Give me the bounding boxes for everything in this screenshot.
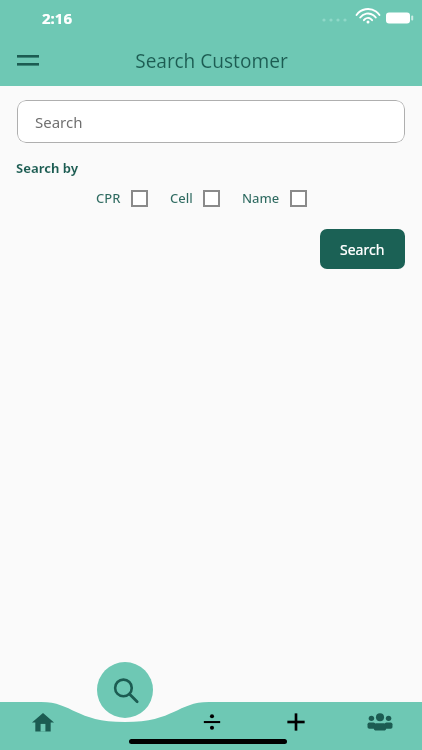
button[interactable]: Name bbox=[242, 189, 307, 207]
staticText: 2:16 bbox=[42, 8, 72, 28]
button[interactable]: Cell bbox=[170, 189, 220, 207]
staticText: Cell bbox=[170, 189, 193, 207]
button[interactable]: Menu bbox=[8, 41, 48, 81]
button[interactable]: Search bbox=[17, 100, 405, 143]
button[interactable]: Search bbox=[320, 229, 405, 269]
button[interactable]: Search bbox=[97, 662, 153, 718]
button[interactable]: Add bbox=[254, 698, 338, 746]
staticText: Search bbox=[35, 112, 83, 132]
staticText: CPR bbox=[96, 189, 121, 207]
button[interactable]: CPR bbox=[96, 189, 148, 207]
staticText: Name bbox=[242, 189, 280, 207]
staticText: Search Customer bbox=[135, 48, 288, 74]
button[interactable]: Customers bbox=[338, 698, 422, 746]
button[interactable]: Home bbox=[0, 698, 85, 746]
button[interactable]: Divide bbox=[170, 698, 254, 746]
staticText: Search by bbox=[16, 159, 79, 177]
staticText: Search bbox=[340, 240, 385, 259]
